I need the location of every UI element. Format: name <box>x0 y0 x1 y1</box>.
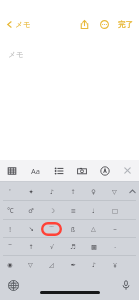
staticText: ! <box>9 225 11 233</box>
button[interactable]: Symbol ß <box>62 220 83 237</box>
staticText: ◉ <box>7 261 13 268</box>
staticText: ♀ <box>91 188 96 195</box>
button[interactable]: Symbol ♬ <box>62 238 83 255</box>
staticText: · <box>114 243 116 251</box>
staticText: ♬ <box>70 243 76 250</box>
staticText: ≡ <box>70 207 76 214</box>
staticText: ▽ <box>112 188 117 195</box>
staticText: ↘ <box>28 225 34 232</box>
staticText: ' <box>9 187 11 195</box>
button[interactable]: Symbol ✦ <box>20 182 41 200</box>
button[interactable]: Back to Notes <box>4 18 33 31</box>
staticText: Aa <box>31 166 40 176</box>
button[interactable]: Symbol ◿ <box>41 256 62 273</box>
button[interactable]: pen <box>93 166 116 176</box>
staticText: ✒ <box>70 261 76 268</box>
button[interactable]: Change keyboard language <box>6 278 20 292</box>
staticText: ↑ <box>28 243 34 250</box>
button[interactable]: Symbol ↑ <box>20 238 41 255</box>
staticText: √ <box>50 243 54 250</box>
button[interactable]: Symbol ♀ <box>83 182 104 200</box>
button[interactable]: Symbol ♩ <box>83 201 104 219</box>
staticText: ☽ <box>49 207 55 214</box>
button[interactable]: Symbol °C <box>0 201 20 219</box>
button[interactable]: aa <box>24 166 47 176</box>
staticText: ß <box>71 225 75 233</box>
button[interactable]: Symbol ☽ <box>41 201 62 219</box>
button[interactable]: Symbol √ <box>41 238 62 255</box>
button[interactable]: Symbol ¥ <box>104 256 125 273</box>
staticText: △ <box>91 225 96 232</box>
button[interactable]: Symbol ↘ <box>20 220 41 237</box>
button[interactable]: Symbol ⌒ <box>41 220 62 237</box>
staticText: ¥ <box>113 261 117 269</box>
staticText: ♩ <box>92 207 95 214</box>
button[interactable]: Symbol ▽ <box>104 182 125 200</box>
staticText: 完了 <box>118 20 133 29</box>
staticText: °C <box>7 206 14 214</box>
staticText: ✦ <box>28 188 34 195</box>
button[interactable]: Symbol ▽ <box>20 256 41 273</box>
button[interactable]: Symbol △ <box>83 220 104 237</box>
button[interactable]: Share <box>77 17 92 32</box>
staticText: ◿ <box>49 261 54 268</box>
button[interactable]: Symbol ♪ <box>83 256 104 273</box>
staticText: ♂ <box>28 207 34 214</box>
button[interactable]: Symbol ≡ <box>62 201 83 219</box>
staticText: ¯ <box>8 243 12 251</box>
button[interactable]: Symbol □ <box>104 201 125 219</box>
button[interactable]: Symbol ! <box>0 220 20 237</box>
button[interactable]: Close keyboard <box>116 166 139 175</box>
button[interactable]: 完了 <box>116 18 135 31</box>
button[interactable]: Symbol ▩ <box>83 238 104 255</box>
button[interactable]: Symbol ♂ <box>20 201 41 219</box>
staticText: ▽ <box>28 261 33 268</box>
staticText: ♪ <box>50 188 54 195</box>
staticText: ⌒ <box>48 225 55 233</box>
button[interactable]: Collapse <box>125 182 139 200</box>
button[interactable]: More options <box>97 17 112 32</box>
button[interactable]: Symbol ¯ <box>0 238 20 255</box>
staticText: □ <box>112 207 118 214</box>
button[interactable]: table <box>0 166 24 176</box>
staticText: ♪ <box>92 261 96 268</box>
button[interactable]: Symbol ~ <box>104 220 125 237</box>
button[interactable]: Dictation <box>119 278 133 292</box>
button[interactable]: Symbol † <box>62 182 83 200</box>
staticText: メモ <box>8 50 24 59</box>
button[interactable]: Symbol ◉ <box>0 256 20 273</box>
staticText: ~ <box>113 225 117 233</box>
staticText: ▩ <box>91 243 97 250</box>
button[interactable]: camera <box>70 166 93 176</box>
staticText: メモ <box>15 20 31 29</box>
staticText: † <box>71 187 75 195</box>
button[interactable]: list <box>47 166 70 176</box>
button[interactable]: Symbol ✒ <box>62 256 83 273</box>
button[interactable]: Symbol ♪ <box>41 182 62 200</box>
